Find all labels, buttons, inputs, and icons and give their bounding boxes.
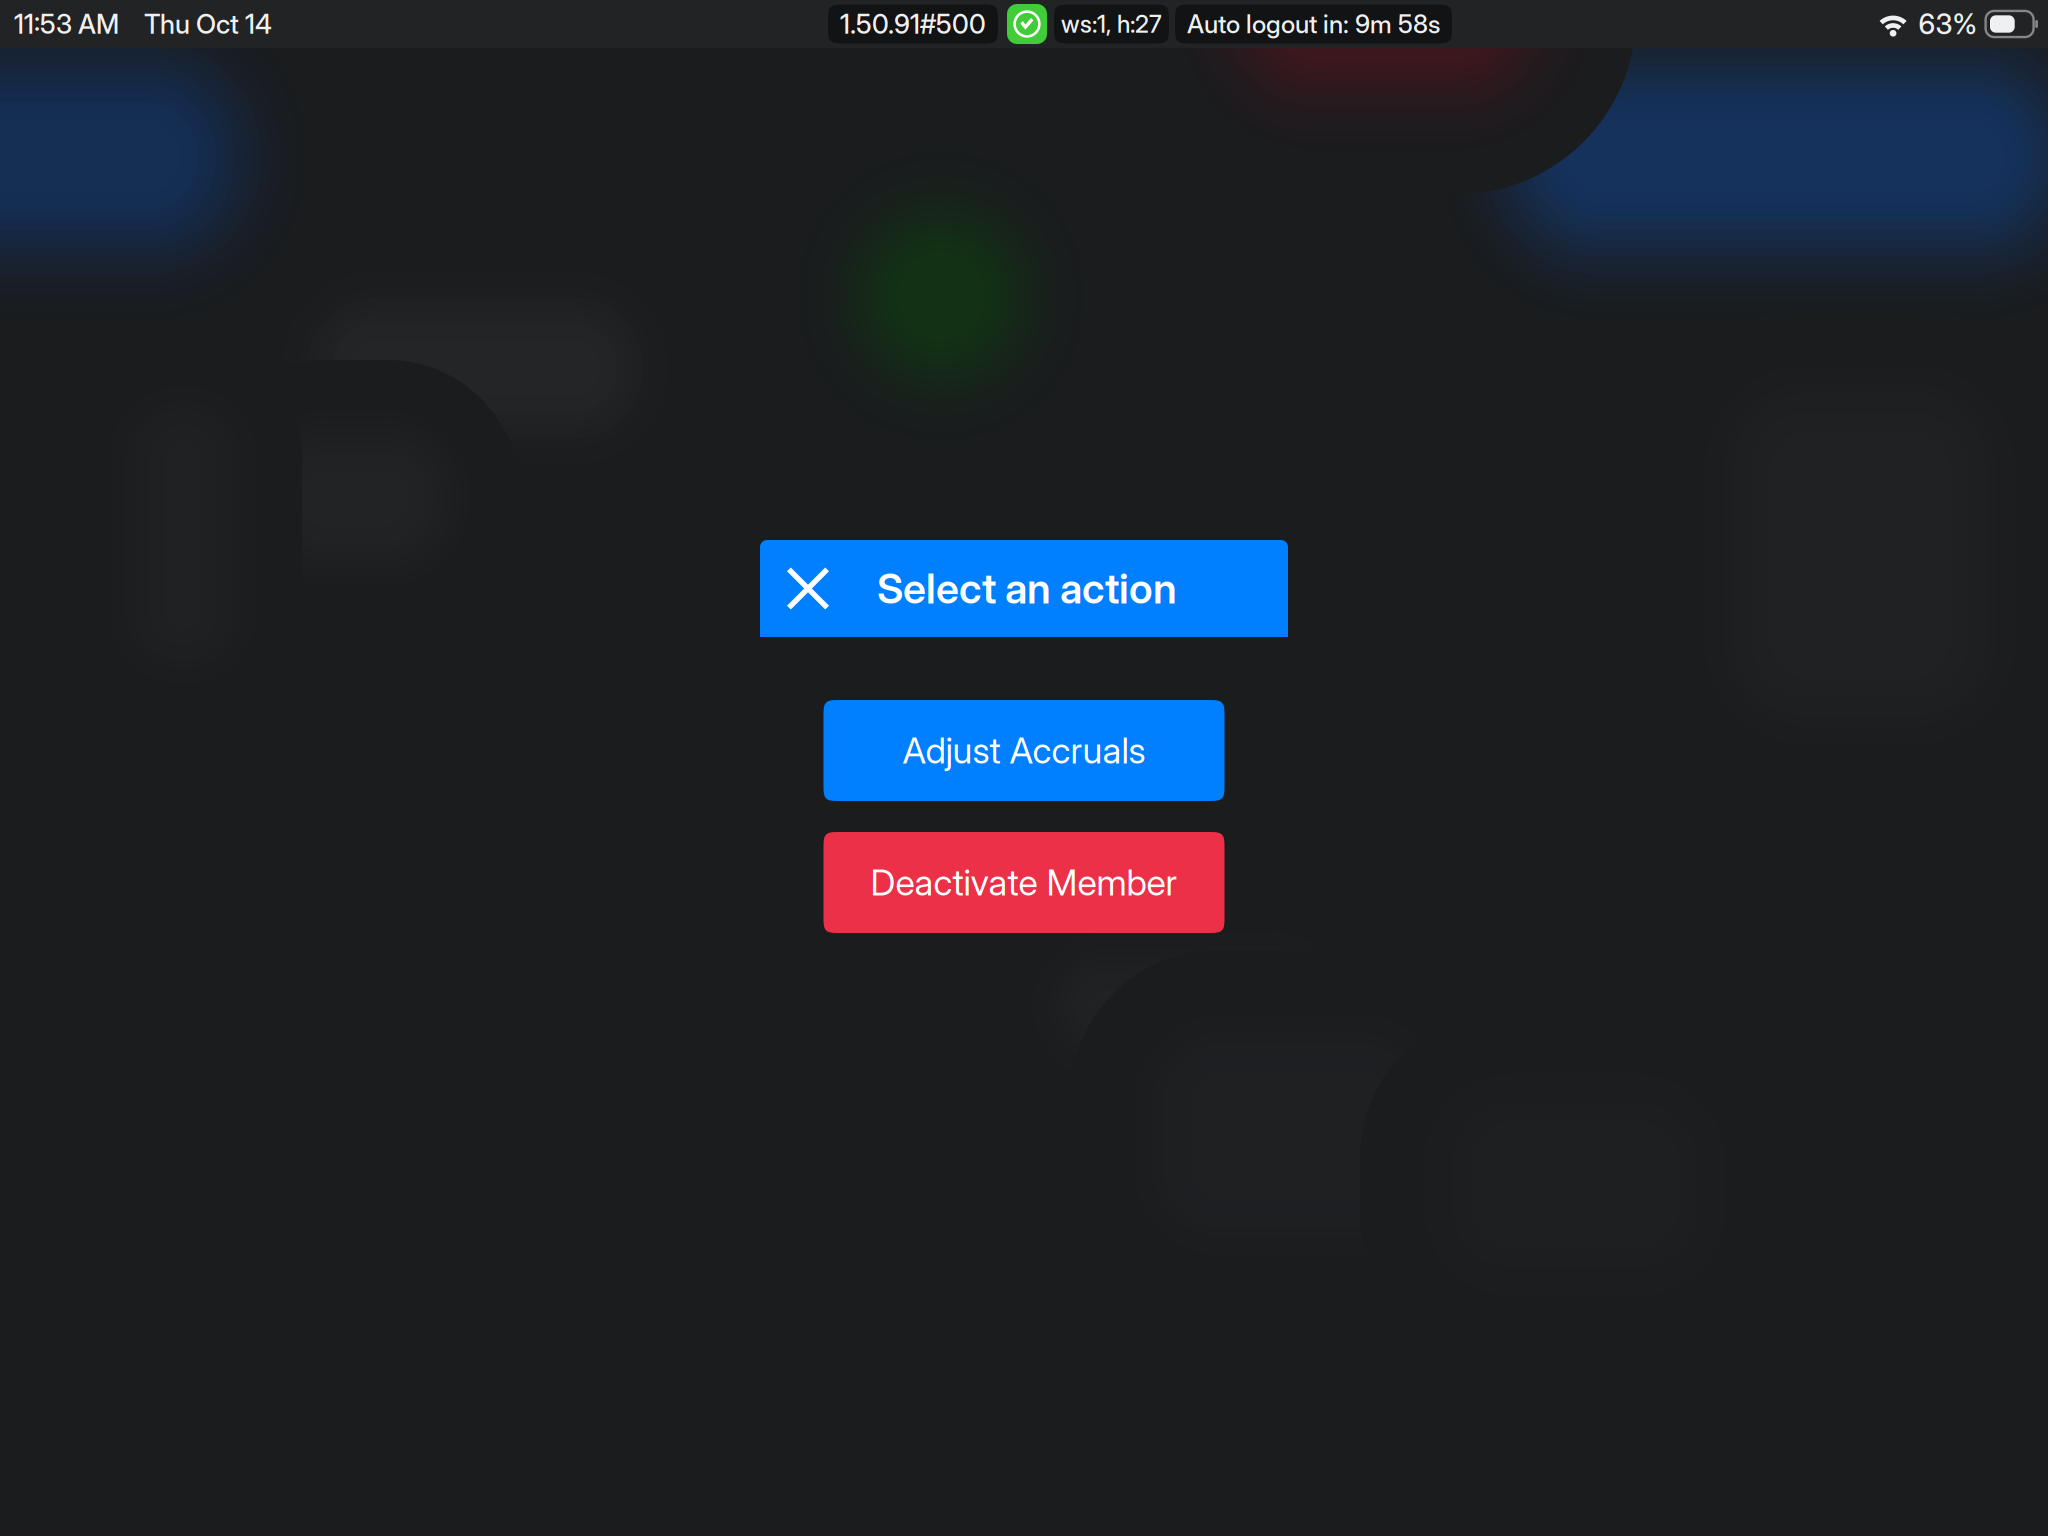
button[interactable]: Adjust Accruals [823, 700, 1224, 801]
staticText: Deactivate Member [870, 861, 1177, 904]
staticText: Thu Oct 14 [144, 8, 272, 40]
staticText: Auto logout in: 9m 58s [1187, 9, 1440, 39]
staticText: Select an action [877, 563, 1177, 613]
button[interactable]: Connection status [1007, 4, 1047, 44]
staticText: Adjust Accruals [902, 729, 1145, 772]
button[interactable]: Select an action [760, 540, 1288, 637]
staticText: 63% [1919, 7, 1978, 41]
button[interactable]: Deactivate Member [823, 832, 1224, 933]
staticText: 11:53 AM [14, 8, 119, 40]
staticText: 1.50.91#500 [840, 8, 986, 40]
staticText: ws:1, h:27 [1061, 9, 1162, 38]
